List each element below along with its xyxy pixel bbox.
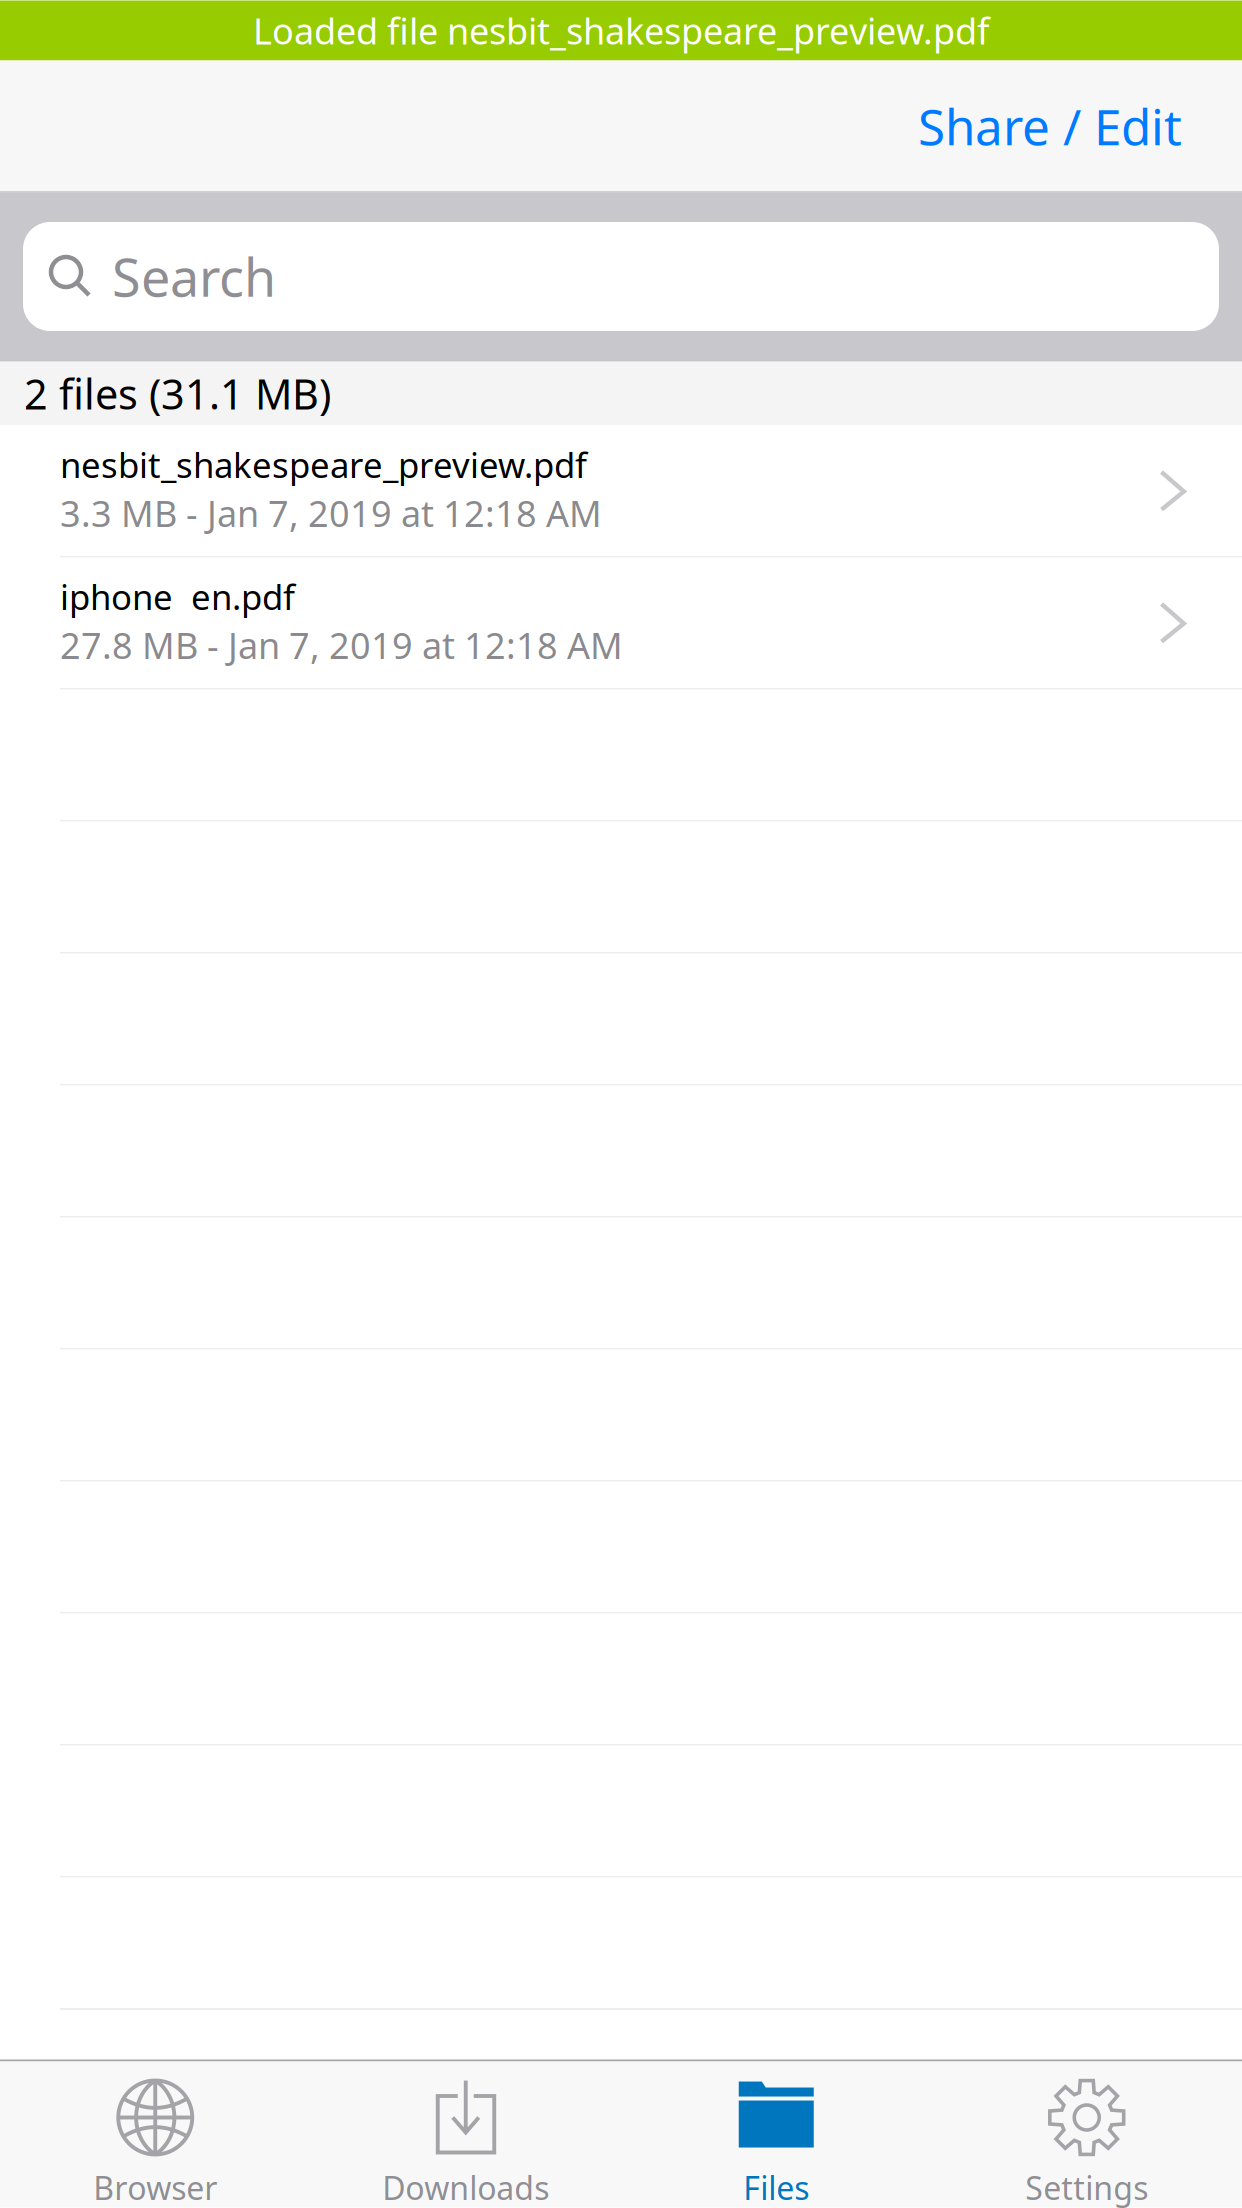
staticText: 27.8 MB - Jan 7, 2019 at 12:18 AM — [60, 621, 623, 669]
button[interactable]: iphone en.pdf — [0, 557, 1242, 689]
staticText: Settings — [1025, 2166, 1148, 2208]
button[interactable]: nesbit_shakespeare_preview.pdf — [0, 425, 1242, 557]
staticText: 2 files (31.1 MB) — [24, 366, 331, 421]
button[interactable]: Settings — [931, 2061, 1242, 2207]
button[interactable]: Browser — [0, 2061, 310, 2207]
button[interactable]: Files — [621, 2061, 931, 2207]
staticText: 3.3 MB - Jan 7, 2019 at 12:18 AM — [60, 489, 602, 537]
button[interactable]: Downloads — [310, 2061, 621, 2207]
staticText: Downloads — [382, 2166, 549, 2208]
staticText: Files — [743, 2166, 809, 2208]
staticText: nesbit_shakespeare_preview.pdf — [60, 441, 587, 487]
staticText: Loaded file nesbit_shakespeare_preview.p… — [253, 7, 989, 54]
staticText: iphone en.pdf — [60, 573, 295, 619]
staticText: Share / Edit — [918, 93, 1182, 159]
staticText: Search — [112, 242, 276, 311]
staticText: Browser — [93, 2166, 217, 2208]
button[interactable]: Share / Edit — [918, 60, 1242, 191]
